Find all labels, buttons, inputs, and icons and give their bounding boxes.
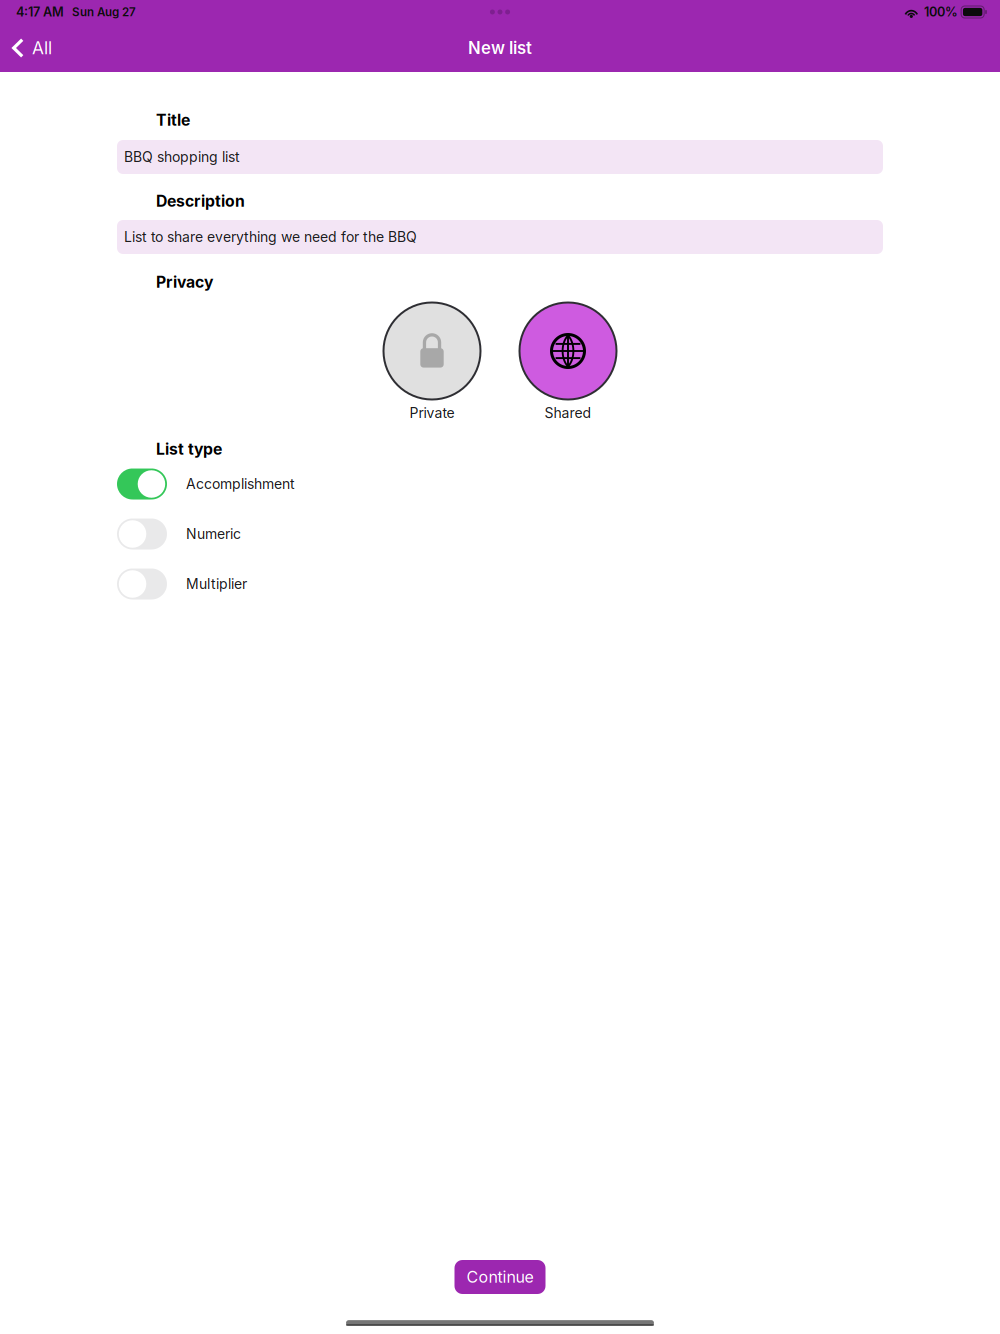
staticText: Private	[409, 404, 454, 421]
button[interactable]: Numeric	[117, 511, 883, 557]
staticText: Sun Aug 27	[72, 5, 136, 19]
button[interactable]: Continue	[454, 1260, 545, 1294]
button[interactable]: Private	[372, 301, 492, 426]
staticText: Numeric	[186, 525, 241, 542]
staticText: Shared	[544, 404, 591, 421]
staticText: Continue	[466, 1267, 533, 1287]
staticText: 100%	[924, 4, 958, 20]
staticText: List to share everything we need for the…	[124, 228, 417, 245]
button[interactable]: Accomplishment	[117, 461, 883, 507]
staticText: List type	[156, 439, 222, 458]
button[interactable]: BBQ shopping list	[117, 140, 883, 174]
button[interactable]: List to share everything we need for the…	[117, 220, 883, 254]
staticText: Multiplier	[186, 575, 247, 592]
staticText: Accomplishment	[186, 475, 295, 492]
staticText: Description	[156, 191, 245, 210]
staticText: 4:17 AM	[16, 4, 64, 20]
staticText: Privacy	[156, 272, 213, 291]
button[interactable]: Shared	[508, 301, 628, 426]
staticText: Title	[156, 110, 190, 129]
button[interactable]: Multiplier	[117, 561, 883, 607]
staticText: BBQ shopping list	[124, 148, 240, 165]
staticText: New list	[468, 38, 532, 58]
staticText: All	[32, 37, 52, 58]
button[interactable]: Back to All	[0, 26, 66, 70]
